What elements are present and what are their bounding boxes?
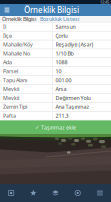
staticText: 1/10 Bb	[55, 50, 73, 57]
staticText: Pafta	[3, 112, 16, 119]
staticText: Mevkii	[3, 94, 19, 101]
button[interactable]: ✓	[0, 120, 111, 134]
staticText: Örneklik Bilgisi	[2, 15, 36, 23]
staticText: İlçe	[3, 32, 12, 39]
staticText: ✓	[35, 124, 39, 130]
staticText: 211.3	[55, 112, 68, 119]
staticText: Ada	[3, 59, 12, 66]
button[interactable]: Menu	[0, 4, 14, 16]
staticText: Mevkii	[3, 85, 19, 93]
staticText: Örneklik Bilgisi	[24, 5, 79, 15]
staticText: Tapu Alanı	[3, 77, 27, 84]
staticText: 1088	[55, 59, 67, 66]
button[interactable]: Örneklik Bilgisi	[0, 16, 38, 22]
button[interactable]: Projects	[0, 184, 22, 202]
staticText: Değirmen Yolu	[55, 94, 90, 101]
staticText: Parsel	[3, 68, 18, 75]
staticText: Çorlu	[55, 32, 67, 39]
staticText: 001.00	[55, 77, 71, 84]
staticText: Bozukluk Listesi	[40, 15, 79, 23]
staticText: Taşınmaz ekle	[41, 124, 76, 131]
staticText: Ana Taşınmaz	[55, 103, 89, 110]
staticText: Samsun	[55, 23, 75, 30]
staticText: Mahalle No	[3, 50, 30, 57]
button[interactable]: Layers	[44, 184, 67, 202]
staticText: Reşadiye (Asar)	[55, 41, 93, 48]
button[interactable]: More	[89, 184, 111, 202]
staticText: İl	[3, 23, 6, 30]
button[interactable]: Locate	[67, 184, 89, 202]
staticText: 10	[55, 68, 61, 75]
staticText: Zemin Tipi	[3, 103, 27, 110]
button[interactable]: Bozukluk Listesi	[38, 16, 81, 22]
button[interactable]: Favorites	[22, 184, 44, 202]
staticText: Arsa	[55, 85, 66, 93]
staticText: 12:45	[100, 0, 109, 5]
staticText: Mahalle/Köy	[3, 41, 33, 48]
